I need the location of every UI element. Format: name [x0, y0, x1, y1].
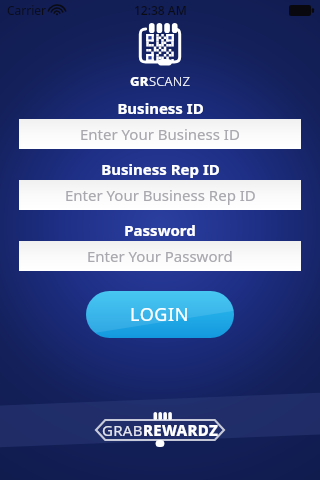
staticText: Enter Your Business ID [80, 124, 240, 144]
staticText: 12:38 AM [134, 2, 187, 18]
staticText: Enter Your Business Rep ID [65, 185, 256, 205]
button[interactable]: Enter Your Password [19, 241, 301, 271]
staticText: LOGIN [130, 302, 190, 327]
staticText: REWARDZ [143, 420, 219, 440]
staticText: GRAB [102, 420, 143, 440]
button[interactable]: Enter Your Business Rep ID [19, 180, 301, 210]
staticText: Enter Your Password [87, 246, 233, 266]
staticText: GR [130, 72, 149, 90]
staticText: Business Rep ID [101, 159, 220, 179]
button[interactable]: LOGIN [86, 291, 234, 338]
staticText: Password [124, 220, 196, 240]
staticText: Business ID [117, 98, 204, 118]
staticText: SCANZ [149, 72, 191, 90]
button[interactable]: Enter Your Business ID [19, 119, 301, 149]
staticText: Carrier [7, 2, 47, 18]
